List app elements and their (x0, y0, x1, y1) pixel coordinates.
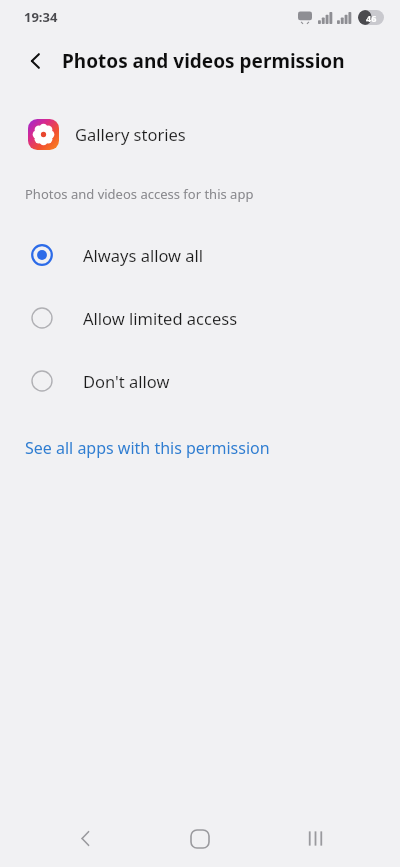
button[interactable]: Recent apps (285, 810, 345, 867)
button[interactable]: See all apps with this permission (0, 428, 400, 468)
staticText: Always allow all (83, 244, 204, 266)
button[interactable]: Allow limited access (0, 286, 400, 349)
staticText: 46 (366, 12, 377, 24)
staticText: Photos and videos permission (62, 48, 345, 74)
button[interactable]: Back (14, 39, 58, 83)
button[interactable]: Always allow all (0, 223, 400, 286)
staticText: 19:34 (24, 8, 58, 26)
button[interactable]: Gallery stories (0, 110, 400, 158)
button[interactable]: Home (170, 810, 230, 867)
staticText: Photos and videos access for this app (25, 185, 254, 203)
staticText: Don't allow (83, 370, 170, 392)
staticText: See all apps with this permission (25, 437, 270, 459)
button[interactable]: Back (55, 810, 115, 867)
staticText: Allow limited access (83, 307, 238, 329)
staticText: Gallery stories (75, 123, 186, 145)
button[interactable]: Don't allow (0, 349, 400, 412)
